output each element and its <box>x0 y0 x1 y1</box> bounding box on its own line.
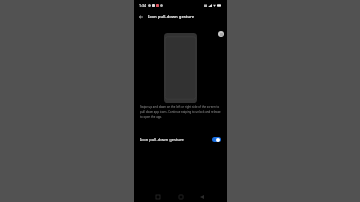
button[interactable]: Back <box>196 191 208 202</box>
staticText: Icon pull-down gesture <box>140 137 184 143</box>
staticText: Swipe up and down on the left or right s… <box>140 105 222 118</box>
staticText: 1:34 <box>139 3 147 8</box>
button[interactable]: Help <box>218 31 224 37</box>
button[interactable]: Icon pull-down gesture <box>134 132 227 147</box>
button[interactable]: Home <box>175 191 187 202</box>
button[interactable]: Navigate up <box>136 12 146 22</box>
button[interactable]: Recents <box>152 191 164 202</box>
staticText: Icon pull-down gesture <box>148 14 195 20</box>
